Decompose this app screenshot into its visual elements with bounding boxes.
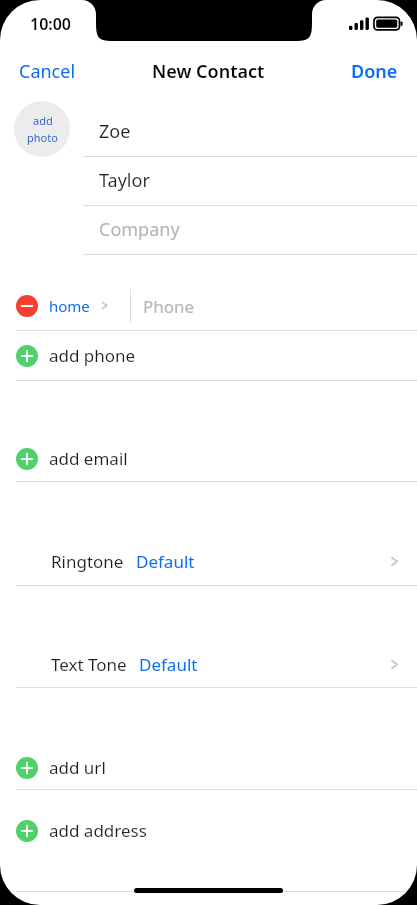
staticText: add [33, 113, 53, 128]
button[interactable]: Company [0, 205, 417, 254]
staticText: 10:00 [30, 13, 72, 35]
button[interactable]: Ringtone [0, 545, 417, 577]
button[interactable]: Zoe [0, 107, 417, 156]
button[interactable]: Text Tone [0, 648, 417, 680]
staticText: Phone [143, 295, 195, 318]
staticText: Done [351, 59, 398, 83]
staticText: Default [139, 653, 198, 676]
staticText: photo [27, 130, 58, 145]
button[interactable]: add email [0, 442, 417, 475]
staticText: New Contact [152, 59, 265, 84]
button[interactable]: Cancel [0, 50, 95, 92]
staticText: add url [49, 756, 106, 779]
staticText: add email [49, 447, 128, 470]
staticText: Cancel [19, 59, 76, 83]
button[interactable]: Taylor [0, 156, 417, 205]
staticText: add phone [49, 344, 136, 367]
button[interactable]: add photo [14, 101, 70, 157]
staticText: Text Tone [51, 653, 127, 676]
staticText: Taylor [99, 168, 150, 193]
staticText: add address [49, 819, 147, 842]
button[interactable]: home [0, 289, 417, 322]
staticText: Company [99, 217, 180, 242]
button[interactable]: Done [332, 50, 417, 92]
button[interactable]: add url [0, 751, 417, 784]
staticText: Ringtone [51, 550, 124, 573]
button[interactable]: add address [0, 814, 417, 847]
button[interactable]: add phone [0, 339, 417, 372]
staticText: home [49, 296, 90, 316]
staticText: Zoe [99, 119, 131, 144]
staticText: Default [136, 550, 195, 573]
